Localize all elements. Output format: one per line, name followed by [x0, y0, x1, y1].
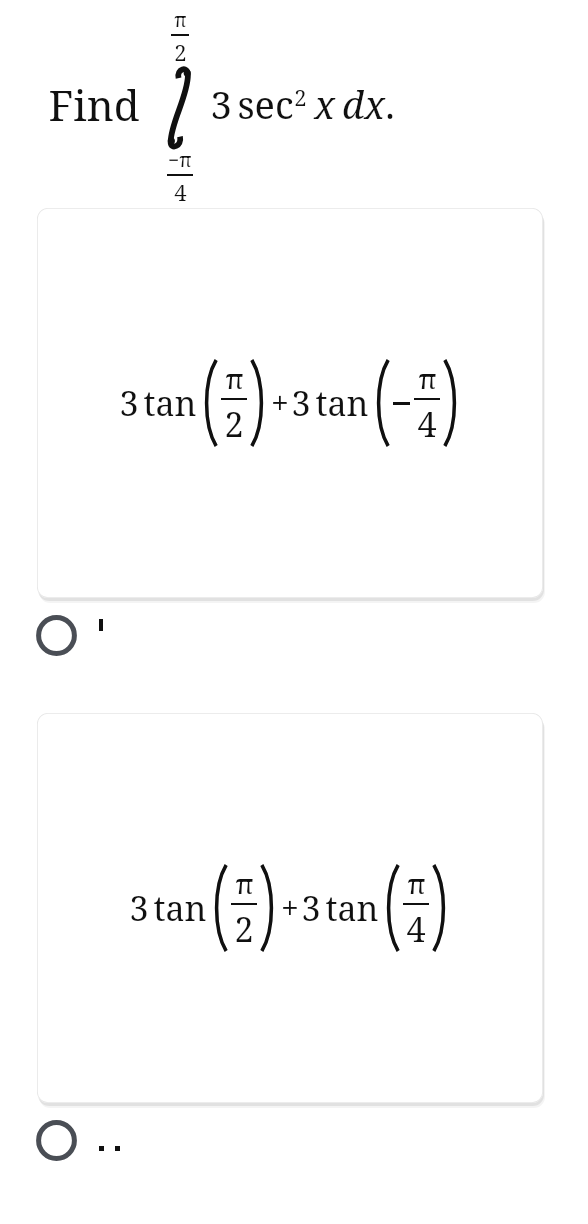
- staticText: sec: [237, 78, 294, 130]
- staticText: tan: [325, 885, 379, 931]
- button[interactable]: 3: [37, 713, 543, 1103]
- staticText: 2: [174, 37, 187, 67]
- staticText: 4: [406, 906, 426, 952]
- staticText: 2: [294, 82, 307, 112]
- button[interactable]: Select answer option: [0, 1111, 588, 1169]
- staticText: tan: [153, 885, 207, 931]
- staticText: 4: [174, 177, 187, 201]
- staticText: 3: [301, 885, 321, 931]
- staticText: π: [225, 359, 244, 397]
- button[interactable]: 3: [37, 208, 543, 598]
- staticText: +: [281, 886, 299, 930]
- button[interactable]: Select answer option: [0, 606, 588, 664]
- staticText: 3: [119, 380, 139, 426]
- staticText: π: [235, 864, 254, 902]
- staticText: π: [418, 359, 437, 397]
- staticText: −π: [168, 147, 192, 173]
- staticText: π: [174, 7, 187, 33]
- staticText: dx: [342, 78, 385, 130]
- staticText: tan: [315, 380, 369, 426]
- staticText: π: [407, 864, 426, 902]
- staticText: 3: [210, 78, 232, 130]
- staticText: .: [385, 78, 395, 130]
- staticText: 4: [417, 401, 437, 447]
- staticText: Find: [48, 76, 140, 133]
- staticText: 3: [129, 885, 149, 931]
- staticText: x: [314, 78, 335, 130]
- staticText: +: [271, 381, 289, 425]
- staticText: 2: [224, 401, 244, 447]
- staticText: tan: [143, 380, 197, 426]
- staticText: 3: [291, 380, 311, 426]
- staticText: 2: [234, 906, 254, 952]
